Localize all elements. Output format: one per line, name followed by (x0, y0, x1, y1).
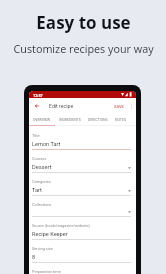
staticText: Easy to use (36, 11, 131, 34)
button[interactable]: Collections (32, 202, 131, 223)
button[interactable]: DIRECTIONS (85, 114, 111, 125)
staticText: DIRECTIONS (88, 118, 108, 122)
button[interactable]: Serving size (32, 246, 131, 269)
staticText: OVERVIEW (33, 118, 50, 122)
button[interactable]: Categories (32, 179, 131, 202)
button[interactable]: Back (29, 98, 45, 114)
staticText: Recipe Keeper (32, 231, 68, 238)
staticText: Tart (32, 187, 42, 194)
staticText: Customize recipes your way (13, 41, 154, 56)
staticText: 12:57 (33, 93, 43, 97)
staticText: Lemon Tart (32, 141, 61, 148)
button[interactable]: Title (32, 133, 131, 156)
staticText: Title (32, 133, 40, 138)
staticText: 8 (32, 254, 36, 261)
staticText: Dessert (32, 164, 52, 171)
staticText: Source (book/magazine/website) (32, 223, 90, 228)
staticText: SAVE (114, 104, 124, 109)
button[interactable]: INGREDIENTS (54, 114, 85, 125)
button[interactable]: Source (book/magazine/website) (32, 223, 131, 246)
staticText: NOTES (115, 118, 127, 122)
staticText: Edit recipe (49, 103, 74, 109)
button[interactable]: SAVE (112, 104, 126, 109)
button[interactable]: NOTES (111, 114, 131, 125)
staticText: Collections (32, 202, 52, 207)
staticText: Preparation time (32, 269, 61, 274)
button[interactable]: Courses (32, 156, 131, 179)
staticText: Courses (32, 156, 47, 161)
button[interactable]: More options (126, 98, 136, 114)
staticText: INGREDIENTS (59, 118, 81, 122)
staticText: Categories (32, 179, 51, 184)
button[interactable]: Preparation time (32, 269, 131, 274)
button[interactable]: OVERVIEW (29, 114, 54, 125)
staticText: Serving size (32, 246, 53, 251)
